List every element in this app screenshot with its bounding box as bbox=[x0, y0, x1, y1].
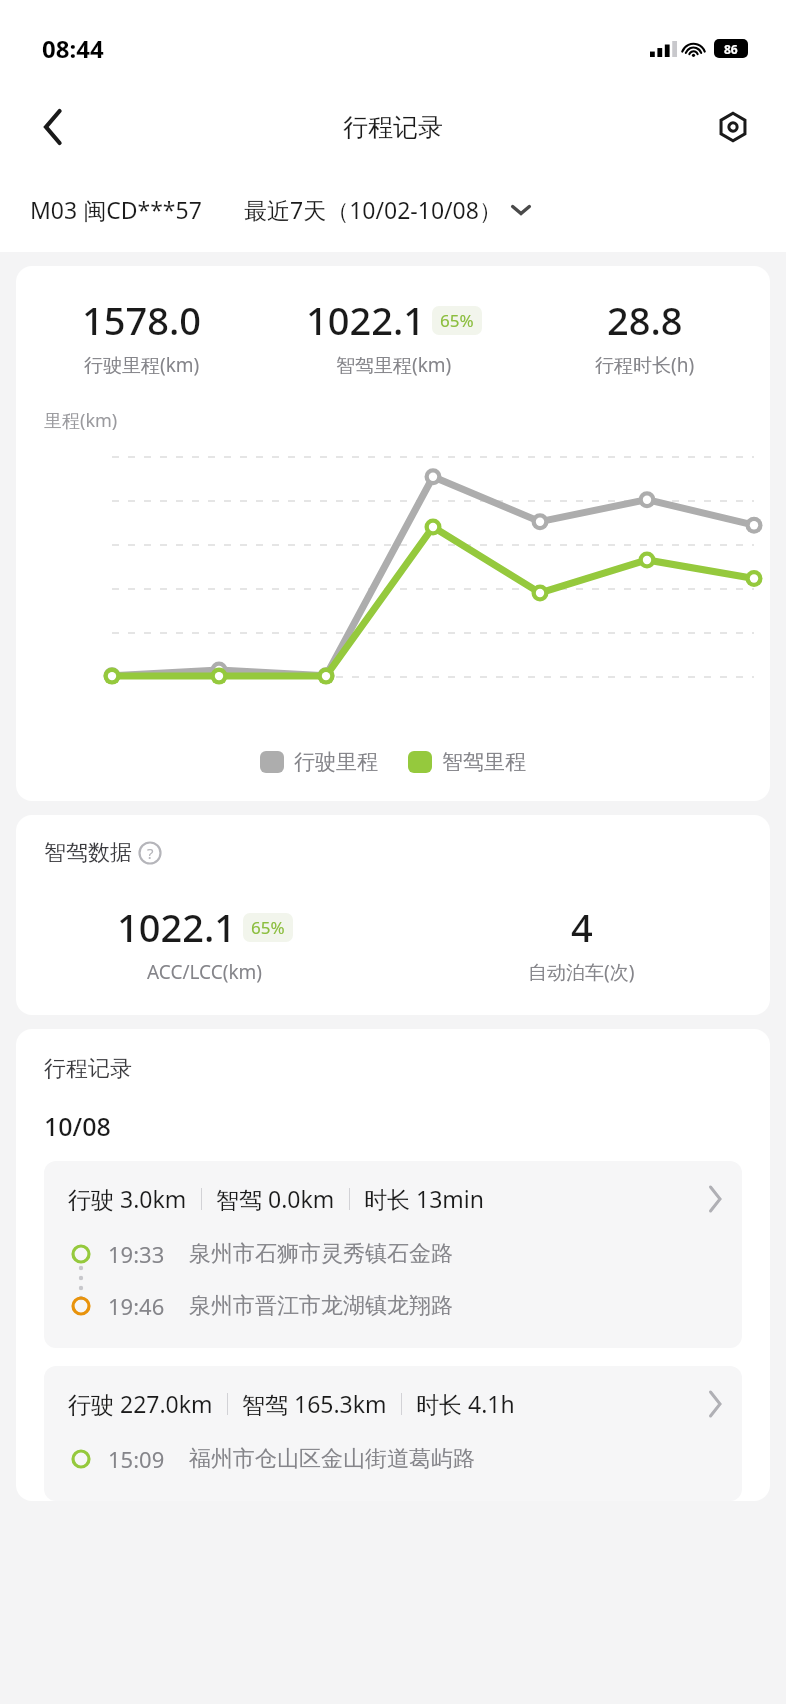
staticText: 65% bbox=[440, 309, 474, 332]
staticText: 行驶 3.0km bbox=[68, 1183, 187, 1214]
staticText: 泉州市晋江市龙湖镇龙翔路 bbox=[189, 1292, 453, 1320]
button[interactable]: 行驶 227.0km bbox=[44, 1366, 742, 1501]
staticText: 行程时长(h) bbox=[595, 352, 695, 378]
staticText: 行驶 227.0km bbox=[68, 1388, 213, 1419]
button[interactable]: M03 闽CD***57 bbox=[30, 194, 202, 225]
staticText: 19:46 bbox=[108, 1291, 165, 1321]
button[interactable]: 最近7天（10/02-10/08） bbox=[244, 194, 786, 225]
staticText: 1022.1 bbox=[306, 294, 426, 346]
staticText: ? bbox=[147, 843, 154, 863]
staticText: 1578.0 bbox=[82, 294, 202, 346]
staticText: 86 bbox=[724, 41, 738, 57]
staticText: 智驾 165.3km bbox=[242, 1388, 387, 1419]
staticText: 4 bbox=[571, 901, 593, 953]
staticText: 最近7天（10/02-10/08） bbox=[244, 194, 502, 225]
staticText: 智驾 0.0km bbox=[216, 1183, 335, 1214]
staticText: 19:33 bbox=[108, 1239, 165, 1269]
staticText: 自动泊车(次) bbox=[528, 959, 635, 985]
staticText: 15:09 bbox=[108, 1444, 165, 1474]
staticText: 10/08 bbox=[44, 1109, 111, 1143]
staticText: 时长 13min bbox=[364, 1183, 484, 1214]
button[interactable]: 智驾里程 bbox=[408, 749, 526, 775]
staticText: 行程记录 bbox=[44, 1055, 132, 1083]
button[interactable]: Help bbox=[138, 841, 162, 865]
staticText: 福州市仓山区金山街道葛屿路 bbox=[189, 1445, 475, 1473]
button[interactable]: 行驶里程 bbox=[260, 749, 378, 775]
staticText: 里程(km) bbox=[44, 408, 118, 433]
staticText: 行程记录 bbox=[343, 112, 443, 143]
staticText: 智驾数据 bbox=[44, 839, 132, 867]
button[interactable]: Settings bbox=[708, 102, 758, 152]
staticText: 行驶里程 bbox=[294, 749, 378, 775]
staticText: M03 闽CD***57 bbox=[30, 194, 202, 225]
staticText: 智驾里程 bbox=[442, 749, 526, 775]
staticText: 时长 4.1h bbox=[416, 1388, 515, 1419]
staticText: 65% bbox=[251, 916, 285, 939]
staticText: 08:44 bbox=[42, 32, 104, 65]
button[interactable]: Back bbox=[30, 103, 78, 151]
staticText: 行驶里程(km) bbox=[84, 352, 200, 378]
button[interactable]: 行驶 3.0km bbox=[44, 1161, 742, 1348]
staticText: ACC/LCC(km) bbox=[147, 959, 262, 985]
staticText: 智驾里程(km) bbox=[336, 352, 452, 378]
staticText: 泉州市石狮市灵秀镇石金路 bbox=[189, 1240, 453, 1268]
staticText: 28.8 bbox=[607, 294, 683, 346]
staticText: 1022.1 bbox=[117, 901, 237, 953]
